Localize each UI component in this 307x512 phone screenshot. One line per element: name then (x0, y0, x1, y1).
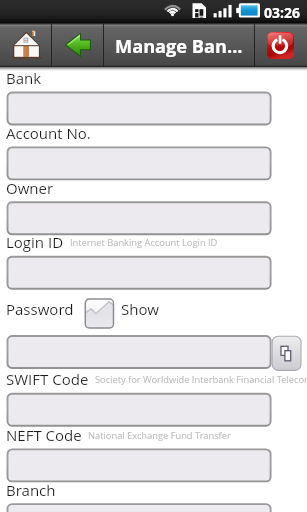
staticText: Branch (6, 480, 56, 500)
button[interactable]: Power off (255, 23, 307, 67)
staticText: SWIFT Code (6, 369, 89, 389)
button[interactable]: Text field (7, 202, 271, 234)
staticText: Account No. (6, 123, 91, 143)
staticText: Society for Worldwide Interbank Financia… (95, 373, 307, 386)
button[interactable]: Show (121, 299, 159, 319)
staticText: Owner (6, 178, 54, 198)
button[interactable]: Text field (7, 93, 271, 125)
staticText: NEFT Code (6, 425, 82, 445)
staticText: Password (6, 299, 74, 319)
button[interactable]: Text field (7, 504, 271, 512)
button[interactable]: Text field (7, 336, 271, 368)
button[interactable]: Show password (85, 299, 113, 328)
staticText: 03:26 (264, 3, 300, 22)
button[interactable]: Back (52, 23, 103, 67)
staticText: Bank (6, 68, 42, 88)
button[interactable]: Text field (7, 449, 271, 481)
staticText: Internet Banking Account Login ID (70, 236, 218, 249)
button[interactable]: Copy password (272, 336, 301, 370)
button[interactable]: Text field (7, 147, 271, 179)
staticText: Manage Ban... (115, 34, 243, 59)
button[interactable]: Manage Ban... (104, 23, 254, 67)
staticText: National Exchange Fund Transfer (88, 429, 231, 442)
staticText: Login ID (6, 232, 64, 252)
button[interactable]: Text field (7, 257, 271, 289)
button[interactable]: Text field (7, 394, 271, 426)
button[interactable]: Home (0, 23, 51, 67)
